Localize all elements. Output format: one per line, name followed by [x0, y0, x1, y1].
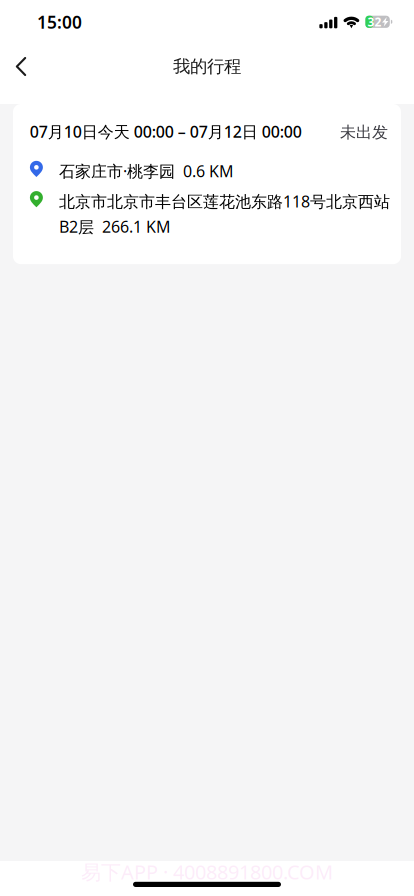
staticText: 15:00	[37, 10, 82, 33]
staticText: 易下APP · 4008891800.COM	[81, 858, 333, 885]
staticText: 我的行程	[173, 56, 241, 77]
staticText: 07月10日今天 00:00 – 07月12日 00:00	[30, 121, 302, 142]
staticText: 未出发	[340, 123, 388, 142]
button[interactable]: Back	[0, 44, 42, 88]
staticText: 北京市北京市丰台区莲花池东路118号北京西站B2层 266.1 KM	[59, 191, 390, 237]
staticText: 石家庄市·桃李园 0.6 KM	[59, 160, 234, 181]
staticText: 32	[368, 14, 382, 30]
